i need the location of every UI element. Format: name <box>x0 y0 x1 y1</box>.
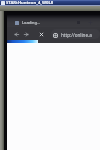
button[interactable]: Tab <box>73 18 84 27</box>
staticText: http://online.a <box>61 32 92 38</box>
button[interactable]: Stop loading <box>37 30 45 38</box>
staticText: STARtHunteon_4_W0L8 <box>6 0 54 5</box>
button[interactable]: Back <box>12 30 20 38</box>
button[interactable]: New tab <box>85 18 96 27</box>
button[interactable]: http://online.a <box>51 29 100 39</box>
button[interactable]: Loading... <box>13 18 48 27</box>
staticText: Loading... <box>22 20 40 25</box>
button[interactable]: Forward <box>22 30 30 38</box>
